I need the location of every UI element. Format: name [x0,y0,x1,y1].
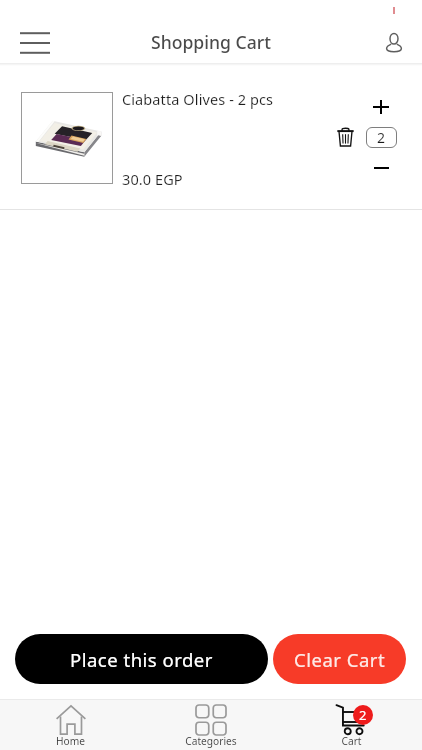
button[interactable]: 2 [281,699,422,750]
staticText: 30.0 EGP [122,169,183,189]
staticText: 2 [359,706,367,724]
staticText: Ciabatta Olives - 2 pcs [122,89,274,109]
button[interactable]: Decrease quantity [365,152,397,184]
staticText: Shopping Cart [151,30,271,54]
button[interactable]: Account [374,22,414,62]
button[interactable]: Clear Cart [273,634,406,684]
staticText: Place this order [70,647,213,672]
staticText: Cart [341,734,362,748]
button[interactable]: Menu [11,22,58,63]
staticText: 2 [377,128,386,147]
button[interactable]: Home [0,699,140,750]
staticText: Clear Cart [294,647,386,672]
button[interactable]: Increase quantity [365,91,397,123]
button[interactable]: Remove item [333,125,357,149]
staticText: Home [56,734,85,748]
button[interactable]: Place this order [15,634,268,684]
button[interactable]: Categories [140,699,281,750]
staticText: Categories [185,734,237,748]
